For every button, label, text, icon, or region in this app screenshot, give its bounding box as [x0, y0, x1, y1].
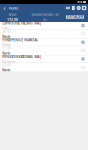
staticText: Samlet beløb i år — [31, 12, 58, 17]
staticText: DETALJER — [67, 15, 83, 19]
staticText: 3/3 — [81, 65, 86, 70]
button[interactable]: LØNUDBETALING MAJ — [0, 22, 88, 29]
staticText: Pension — [2, 59, 15, 64]
button[interactable]: 12.05 — [0, 46, 88, 55]
staticText: 1/3 — [81, 32, 86, 36]
button[interactable]: DETALJER — [66, 15, 84, 19]
button[interactable]: PENSIONSBIDRAG MAJ — [0, 55, 88, 63]
staticText: Løn — [2, 26, 8, 30]
staticText: 30.05 — [2, 29, 11, 34]
button[interactable]: Vis — [65, 5, 71, 11]
staticText: PENSIONSBIDRAG MAJ — [2, 54, 41, 59]
button[interactable]: Mere — [81, 5, 87, 11]
staticText: Ferie — [2, 42, 10, 47]
staticText: ‹ — [3, 3, 5, 13]
staticText: Antal — [8, 12, 16, 17]
button[interactable]: FERIEPENGE KVARTAL — [0, 39, 88, 46]
button[interactable]: 30.05 — [0, 30, 88, 38]
staticText: LØNUDBETALING MAJ — [2, 21, 41, 26]
button[interactable]: 03.05 — [0, 63, 88, 72]
staticText: Konto — [9, 5, 18, 11]
staticText: Bank — [2, 68, 10, 72]
staticText: kr — [43, 17, 46, 22]
staticText: 03.05 — [2, 62, 11, 67]
button[interactable]: Tilbage — [0, 4, 9, 12]
staticText: 172,00 — [7, 17, 18, 22]
staticText: Bank — [2, 34, 10, 39]
button[interactable]: Dokumenter — [71, 5, 76, 11]
button[interactable]: Historik — [76, 5, 81, 11]
staticText: 12.05 — [2, 46, 11, 50]
staticText: FERIEPENGE KVARTAL — [2, 38, 38, 42]
staticText: Bank — [2, 51, 10, 56]
staticText: 2/3 — [81, 48, 86, 53]
